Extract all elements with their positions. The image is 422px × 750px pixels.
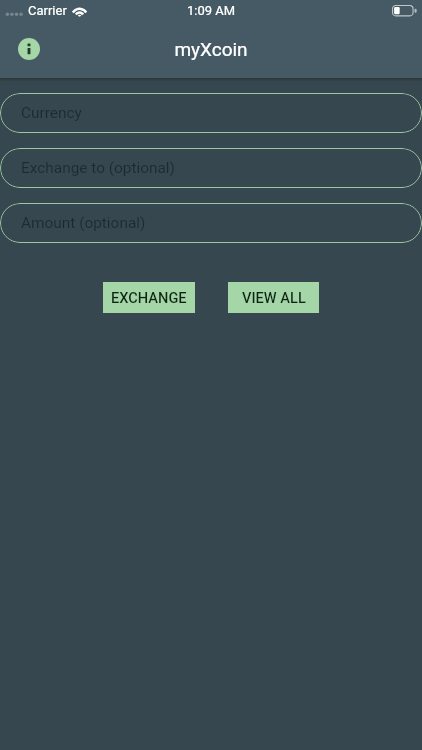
staticText: Currency	[21, 104, 82, 122]
button[interactable]: Info	[18, 38, 40, 60]
button[interactable]: EXCHANGE	[103, 282, 195, 313]
staticText: Exchange to (optional)	[21, 159, 175, 177]
button[interactable]: VIEW ALL	[228, 282, 319, 313]
button[interactable]: Exchange to (optional)	[0, 148, 422, 188]
staticText: 1:09 AM	[0, 3, 422, 18]
staticText: myXcoin	[0, 38, 422, 60]
staticText: VIEW ALL	[242, 289, 306, 306]
button[interactable]: Currency	[0, 93, 422, 133]
staticText: Amount (optional)	[21, 214, 146, 232]
staticText: EXCHANGE	[111, 289, 187, 306]
button[interactable]: Amount (optional)	[0, 203, 422, 243]
staticText: Carrier	[28, 3, 67, 18]
